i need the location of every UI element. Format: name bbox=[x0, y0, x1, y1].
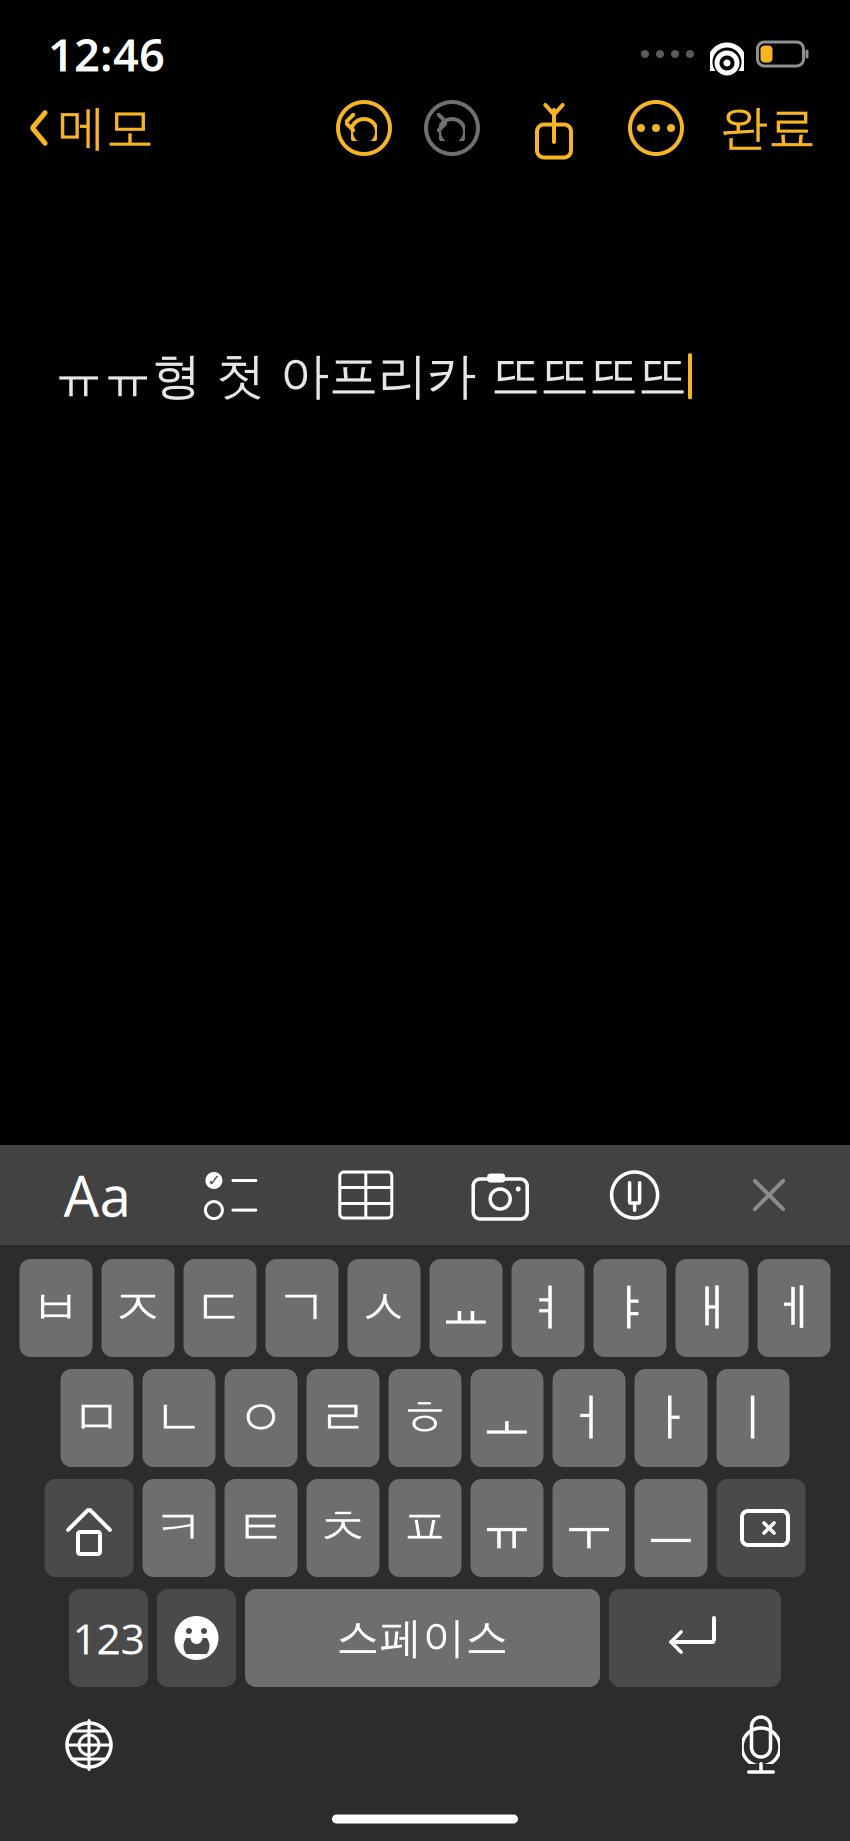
button[interactable]: ㄹ bbox=[306, 1369, 379, 1467]
button[interactable]: 카메라 bbox=[465, 1145, 535, 1245]
button[interactable]: ㅈ bbox=[101, 1259, 174, 1357]
button[interactable]: ㄴ bbox=[142, 1369, 215, 1467]
button[interactable]: ㅣ bbox=[716, 1369, 789, 1467]
staticText: ㄷ bbox=[194, 1277, 245, 1339]
button[interactable]: 받아쓰기 bbox=[718, 1702, 804, 1788]
staticText: ㅊ bbox=[317, 1497, 368, 1559]
staticText: ㅠ bbox=[481, 1497, 532, 1559]
button[interactable]: 추가 옵션 bbox=[628, 100, 684, 156]
staticText: ㅓ bbox=[563, 1387, 614, 1449]
staticText: ㄴ bbox=[153, 1387, 204, 1449]
staticText: ㅍ bbox=[399, 1497, 450, 1559]
staticText: 메모 bbox=[58, 98, 154, 157]
button[interactable]: ㅕ bbox=[511, 1259, 584, 1357]
staticText: Aa bbox=[63, 1158, 130, 1232]
button[interactable]: 다시 실행 bbox=[424, 100, 480, 156]
button[interactable]: 삭제 bbox=[716, 1479, 805, 1577]
button[interactable]: 메모 bbox=[18, 93, 164, 163]
staticText: 스페이스 bbox=[336, 1612, 508, 1664]
button[interactable]: 체크리스트 bbox=[196, 1145, 266, 1245]
staticText: ㅜ bbox=[563, 1497, 614, 1559]
button[interactable]: ㅐ bbox=[675, 1259, 748, 1357]
staticText: 123 bbox=[72, 1610, 144, 1666]
button[interactable]: ㅔ bbox=[757, 1259, 830, 1357]
button[interactable]: ㅂ bbox=[19, 1259, 92, 1357]
button[interactable]: ㅁ bbox=[60, 1369, 133, 1467]
button[interactable]: ㅌ bbox=[224, 1479, 297, 1577]
staticText: ㅑ bbox=[604, 1277, 655, 1339]
button[interactable]: ㅛ bbox=[429, 1259, 502, 1357]
button[interactable]: ㅊ bbox=[306, 1479, 379, 1577]
staticText: 완료 bbox=[720, 98, 816, 157]
staticText: ㅌ bbox=[235, 1497, 286, 1559]
button[interactable]: 스페이스 bbox=[245, 1589, 600, 1687]
staticText: ㅎ bbox=[399, 1387, 450, 1449]
staticText: ㅇ bbox=[235, 1387, 286, 1449]
button[interactable]: ㄷ bbox=[183, 1259, 256, 1357]
staticText: ㅂ bbox=[30, 1277, 81, 1339]
button[interactable]: ㅍ bbox=[388, 1479, 461, 1577]
staticText: ㅠㅠ형 첫 아프리카 뜨뜨뜨뜨 bbox=[54, 346, 687, 407]
button[interactable]: ㅠ bbox=[470, 1479, 543, 1577]
button[interactable]: ㅜ bbox=[552, 1479, 625, 1577]
button[interactable]: ㅡ bbox=[634, 1479, 707, 1577]
staticText: ㅋ bbox=[153, 1497, 204, 1559]
button[interactable]: ㅋ bbox=[142, 1479, 215, 1577]
staticText: ㄹ bbox=[317, 1387, 368, 1449]
staticText: ✓ bbox=[207, 1171, 220, 1190]
button[interactable]: 닫기 bbox=[734, 1145, 804, 1245]
staticText: ㅁ bbox=[71, 1387, 122, 1449]
staticText: 12:46 bbox=[48, 24, 165, 84]
button[interactable]: ㄱ bbox=[265, 1259, 338, 1357]
button[interactable]: ㅎ bbox=[388, 1369, 461, 1467]
staticText: ㅕ bbox=[522, 1277, 573, 1339]
button[interactable]: ㅅ bbox=[347, 1259, 420, 1357]
button[interactable]: 서식 bbox=[62, 1145, 132, 1245]
button[interactable]: 123 bbox=[69, 1589, 148, 1687]
button[interactable]: 실행 취소 bbox=[336, 100, 392, 156]
button[interactable]: 다음 키보드 bbox=[46, 1702, 132, 1788]
staticText: ㅈ bbox=[112, 1277, 163, 1339]
button[interactable]: ㅑ bbox=[593, 1259, 666, 1357]
staticText: ㅡ bbox=[645, 1497, 696, 1559]
button[interactable]: 이모지 bbox=[157, 1589, 236, 1687]
button[interactable]: ㅓ bbox=[552, 1369, 625, 1467]
button[interactable]: 마크업 bbox=[600, 1145, 670, 1245]
staticText: ㅛ bbox=[440, 1277, 491, 1339]
button[interactable]: Shift bbox=[44, 1479, 133, 1577]
button[interactable]: 완료 bbox=[712, 93, 824, 163]
button[interactable]: 표 bbox=[331, 1145, 401, 1245]
staticText: ㄱ bbox=[276, 1277, 327, 1339]
button[interactable]: ㅇ bbox=[224, 1369, 297, 1467]
staticText: ㅔ bbox=[768, 1277, 819, 1339]
staticText: ㅅ bbox=[358, 1277, 409, 1339]
button[interactable]: 줄바꿈 bbox=[609, 1589, 781, 1687]
staticText: ㅣ bbox=[727, 1387, 778, 1449]
staticText: ㅏ bbox=[645, 1387, 696, 1449]
button[interactable]: ㅗ bbox=[470, 1369, 543, 1467]
button[interactable]: ㅏ bbox=[634, 1369, 707, 1467]
staticText: ㅐ bbox=[686, 1277, 737, 1339]
button[interactable]: 공유 bbox=[532, 100, 576, 156]
staticText: ㅗ bbox=[481, 1387, 532, 1449]
